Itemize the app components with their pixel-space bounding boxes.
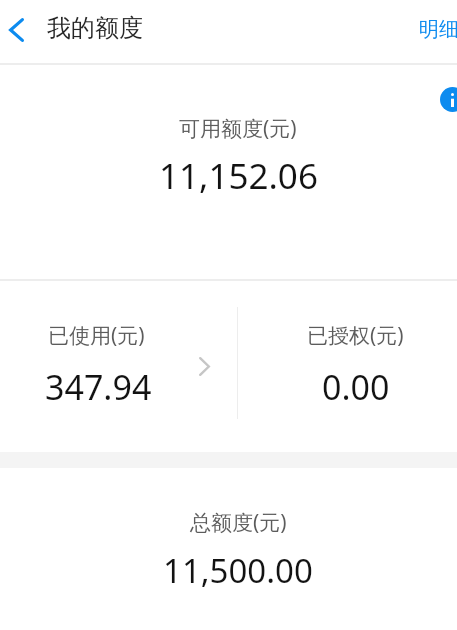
button[interactable]: 已使用(元) [0, 281, 457, 452]
button[interactable]: About your credit limit [430, 77, 457, 122]
staticText: 我的额度 [47, 13, 143, 43]
staticText: 已使用(元) [48, 321, 145, 350]
staticText: 明细 [419, 17, 457, 42]
staticText: 347.94 [45, 364, 152, 410]
button[interactable]: 明细 [410, 8, 457, 55]
staticText: 总额度(元) [190, 508, 287, 537]
staticText: 11,500.00 [163, 548, 313, 593]
staticText: 0.00 [322, 364, 390, 410]
staticText: 可用额度(元) [179, 114, 297, 143]
button[interactable]: Back [0, 0, 42, 63]
staticText: 已授权(元) [307, 321, 404, 350]
staticText: 11,152.06 [159, 152, 318, 200]
